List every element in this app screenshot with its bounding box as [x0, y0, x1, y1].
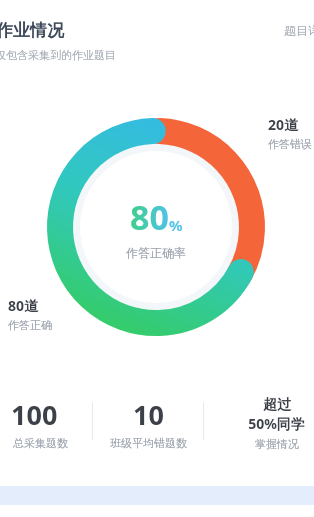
staticText: 80道	[8, 296, 39, 315]
staticText: %	[169, 215, 183, 235]
staticText: 50%同学	[248, 414, 305, 433]
button[interactable]: 10	[93, 396, 203, 458]
other: 作答正确率 80%	[47, 118, 265, 336]
staticText: 20道	[268, 115, 299, 134]
staticText: 10	[133, 396, 164, 433]
staticText: 掌握情况	[255, 437, 299, 451]
button[interactable]: 100	[0, 396, 92, 458]
button[interactable]: 超过	[204, 396, 308, 458]
staticText: 作答正确率	[126, 245, 186, 260]
staticText: 总采集题数	[13, 436, 68, 450]
staticText: 班级平均错题数	[110, 436, 187, 450]
staticText: 题目详情	[284, 23, 314, 38]
staticText: 超过	[263, 396, 291, 414]
staticText: 80	[130, 194, 169, 240]
staticText: 采集作业情况	[0, 20, 64, 41]
button[interactable]: 题目详情	[280, 21, 314, 40]
staticText: 100	[11, 396, 58, 433]
staticText: 作答错误	[268, 137, 312, 151]
staticText: 该统计仅包含采集到的作业题目	[0, 48, 116, 62]
staticText: 作答正确	[8, 318, 52, 332]
